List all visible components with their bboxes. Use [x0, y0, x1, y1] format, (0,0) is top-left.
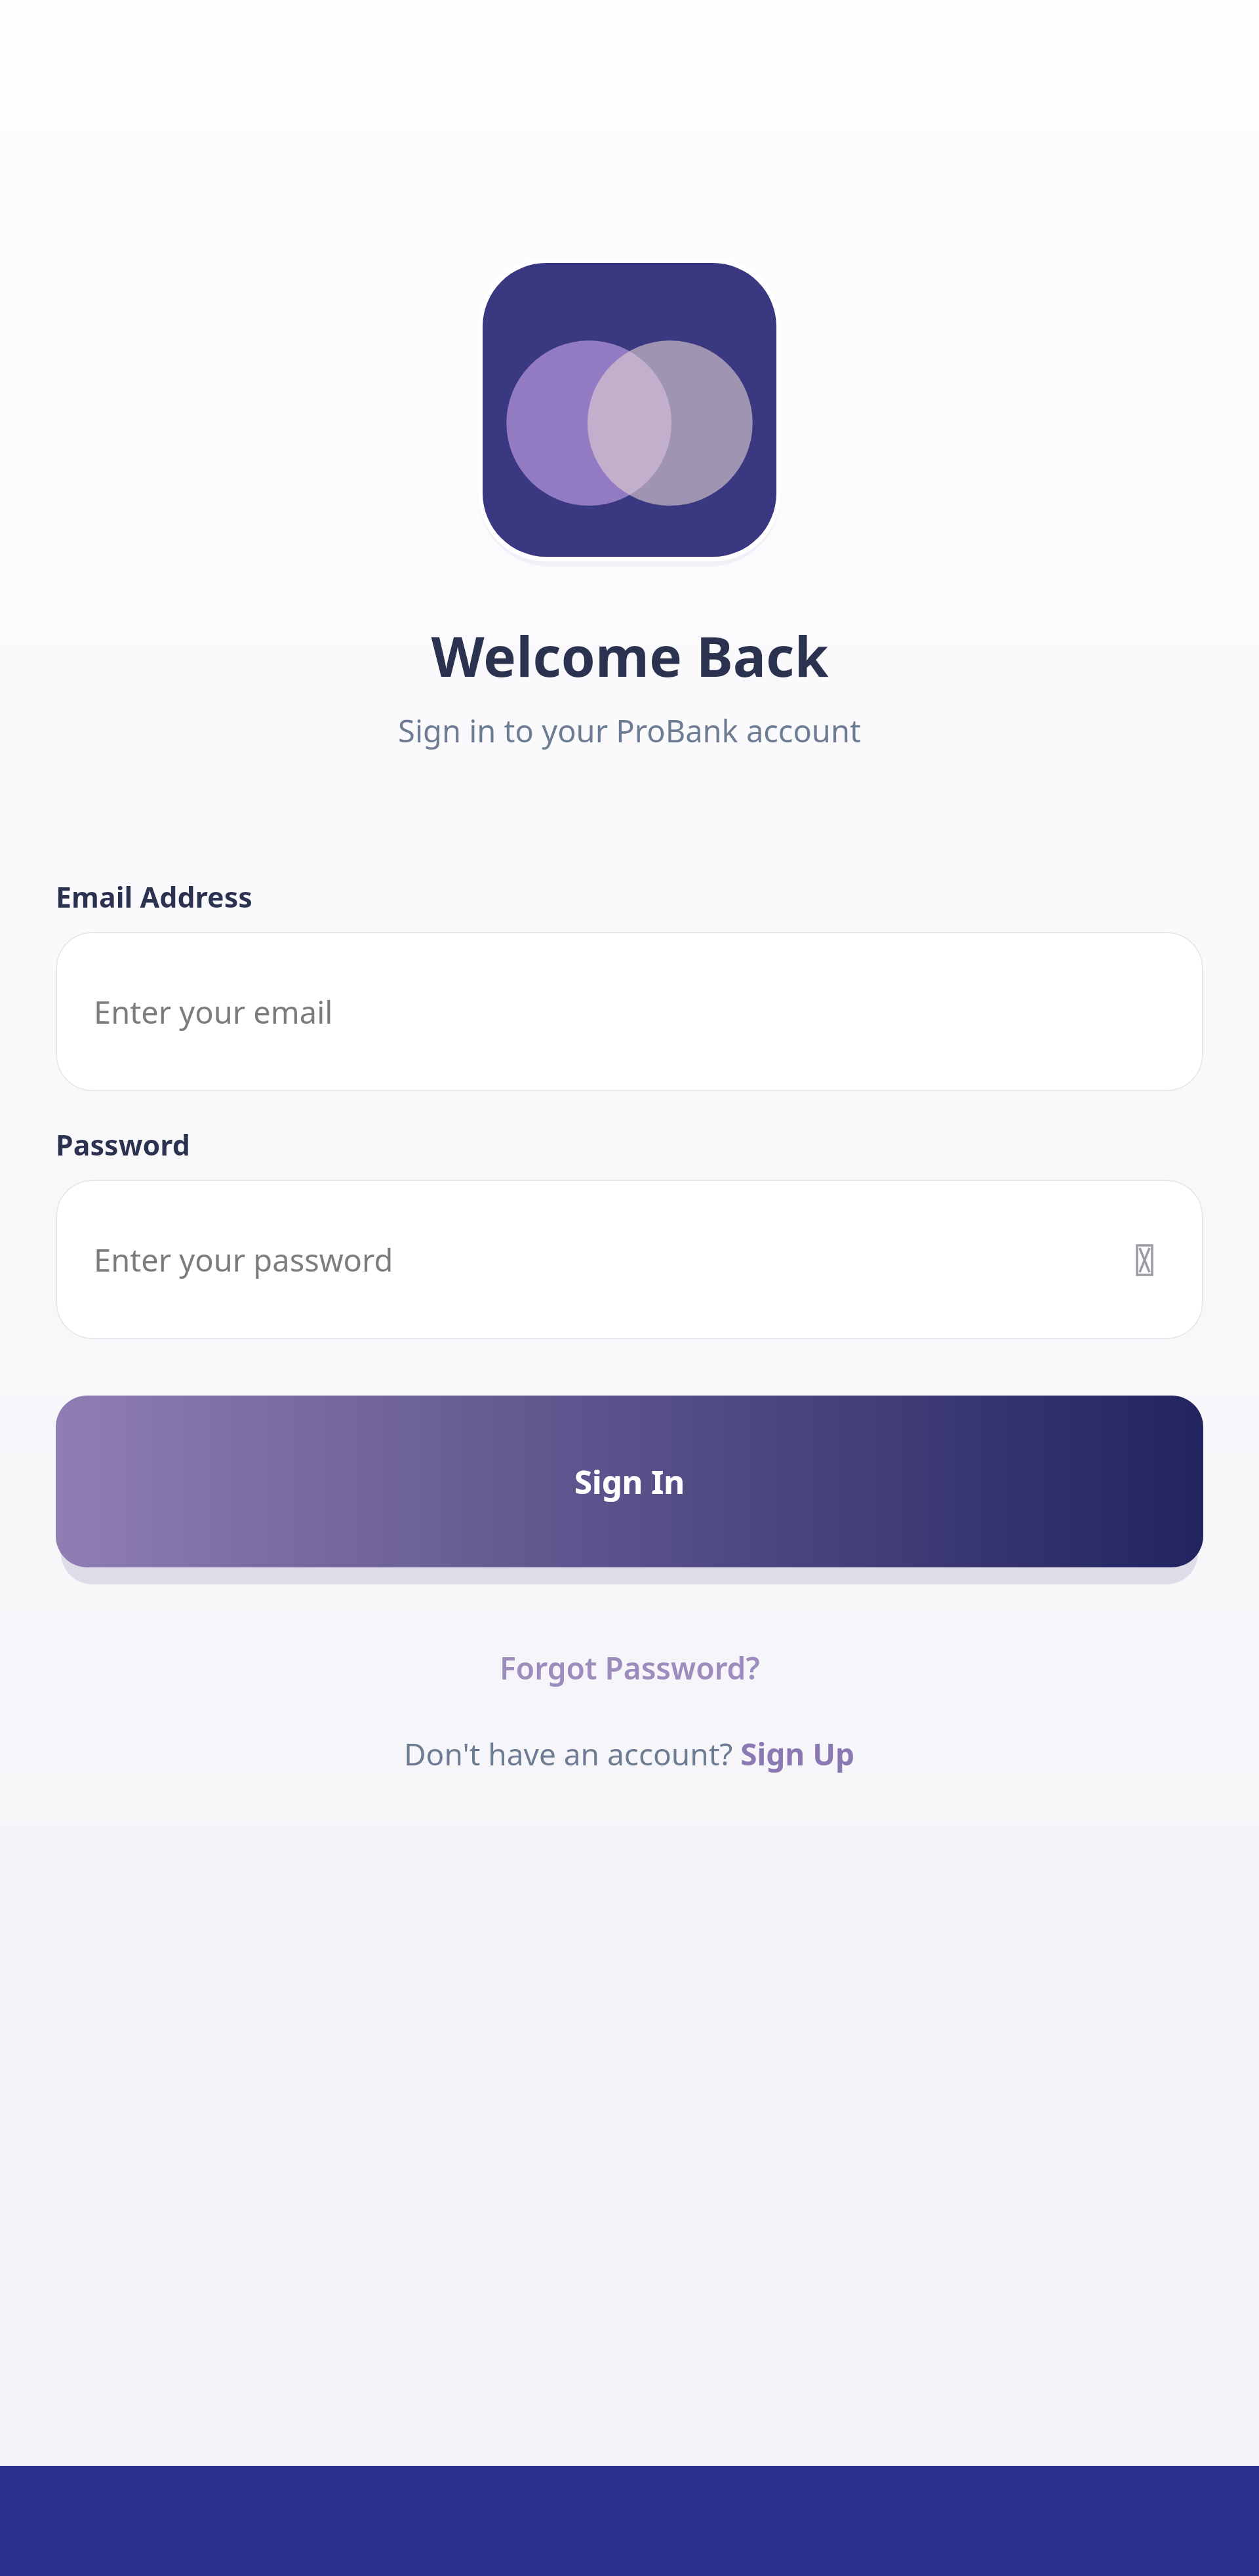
- button[interactable]: Don't have an account? Sign Up: [388, 1725, 871, 1782]
- staticText: Sign In: [574, 1460, 685, 1504]
- staticText: Enter your email: [94, 991, 333, 1033]
- staticText: Don't have an account? Sign Up: [404, 1733, 855, 1775]
- button[interactable]: Enter your password: [56, 1180, 1203, 1339]
- staticText: Password: [56, 1125, 190, 1164]
- button[interactable]: Sign In: [56, 1396, 1203, 1567]
- button[interactable]: Enter your email: [56, 932, 1203, 1091]
- button[interactable]: Forgot Password?: [484, 1640, 776, 1697]
- staticText: Email Address: [56, 877, 252, 916]
- staticText: Sign in to your ProBank account: [398, 710, 861, 752]
- staticText: Enter your password: [94, 1239, 393, 1281]
- button[interactable]: Show password: [1123, 1239, 1165, 1281]
- staticText: Forgot Password?: [500, 1647, 760, 1689]
- staticText: Welcome Back: [431, 618, 829, 693]
